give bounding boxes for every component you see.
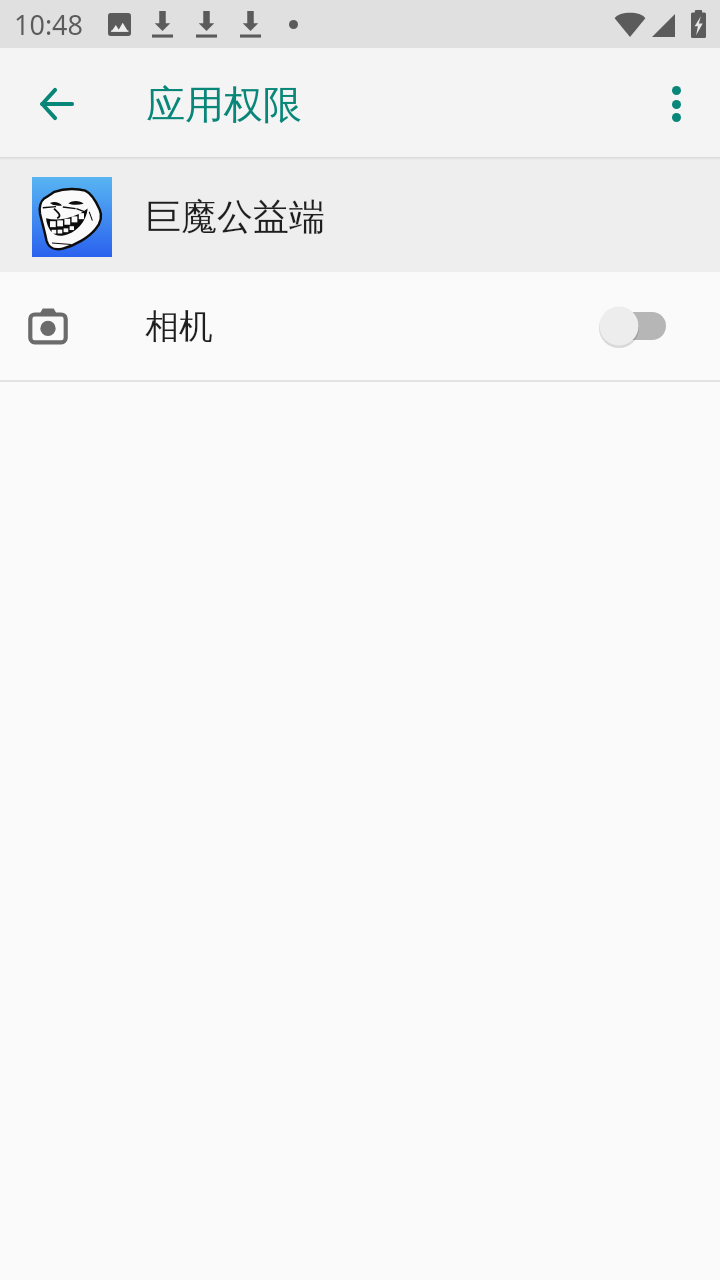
staticText: 应用权限	[146, 80, 302, 129]
button[interactable]: Camera permission toggle	[597, 298, 669, 354]
staticText: 10:48	[14, 6, 84, 43]
button[interactable]: Back	[33, 80, 81, 128]
button[interactable]: 巨魔公益端	[0, 161, 720, 272]
staticText: 巨魔公益端	[145, 194, 325, 239]
button[interactable]: More options	[652, 79, 700, 127]
button[interactable]: 相机	[0, 272, 720, 380]
staticText: 相机	[145, 305, 213, 348]
